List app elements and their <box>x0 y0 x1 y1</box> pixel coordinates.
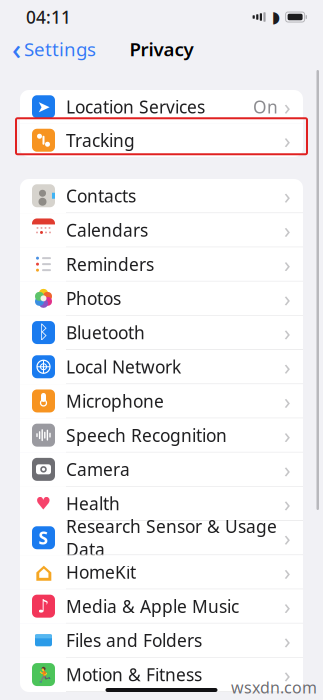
staticText: 04:11 <box>26 5 71 28</box>
button[interactable]: Speech Recognition <box>20 418 303 453</box>
staticText: Tracking <box>66 129 135 152</box>
staticText: › <box>284 421 291 449</box>
button[interactable]: Photos <box>20 282 303 316</box>
staticText: › <box>284 558 291 586</box>
staticText: Calendars <box>66 218 148 241</box>
staticText: Local Network <box>66 355 181 378</box>
staticText: › <box>284 489 291 518</box>
button[interactable]: ⌂ <box>20 555 303 589</box>
button[interactable]: ♥ <box>20 487 303 521</box>
button[interactable]: Files and Folders <box>20 624 303 658</box>
staticText: wsxdn.com <box>231 677 317 698</box>
staticText: Privacy <box>129 37 193 61</box>
staticText: Location Services <box>66 95 205 118</box>
staticText: ♪ <box>37 596 49 617</box>
staticText: Health <box>66 492 120 515</box>
staticText: › <box>284 524 291 552</box>
button[interactable]: Calendars <box>20 213 303 247</box>
button[interactable]: ➤ <box>20 90 303 123</box>
button[interactable]: Reminders <box>20 247 303 282</box>
staticText: › <box>284 126 291 154</box>
staticText: › <box>284 250 291 278</box>
staticText: Settings <box>24 37 96 61</box>
staticText: HomeKit <box>66 560 136 583</box>
staticText: Files and Folders <box>66 629 202 652</box>
staticText: › <box>284 592 291 620</box>
staticText: ‹ <box>12 30 21 68</box>
button[interactable]: S <box>20 521 303 555</box>
staticText: › <box>284 216 291 244</box>
staticText: Reminders <box>66 253 154 276</box>
staticText: Photos <box>66 287 121 310</box>
staticText: Speech Recognition <box>66 424 227 447</box>
staticText: Research Sensor & Usage Data <box>66 515 277 561</box>
staticText: ◗ <box>272 8 280 26</box>
staticText: Camera <box>66 458 130 481</box>
staticText: › <box>284 284 291 312</box>
staticText: › <box>284 660 291 689</box>
staticText: 🏃 <box>34 666 52 683</box>
staticText: › <box>284 182 291 210</box>
staticText: Microphone <box>66 389 164 412</box>
button[interactable]: ‹ <box>0 26 96 72</box>
staticText: › <box>284 626 291 654</box>
button[interactable]: 🏃 <box>20 658 303 692</box>
button[interactable]: Camera <box>20 453 303 487</box>
staticText: On <box>253 95 278 118</box>
staticText: ᛒ <box>38 323 49 342</box>
staticText: › <box>284 93 291 121</box>
staticText: › <box>284 455 291 483</box>
staticText: ⌂ <box>34 558 52 586</box>
staticText: › <box>284 387 291 415</box>
button[interactable]: Tracking <box>20 123 303 157</box>
staticText: ➤ <box>37 98 50 116</box>
staticText: › <box>284 353 291 381</box>
staticText: S <box>38 526 48 549</box>
button[interactable]: ᛒ <box>20 316 303 350</box>
button[interactable]: Local Network <box>20 350 303 384</box>
staticText: Motion & Fitness <box>66 663 202 686</box>
button[interactable]: Contacts <box>20 179 303 213</box>
staticText: ♥ <box>35 494 51 513</box>
button[interactable]: ♪ <box>20 589 303 624</box>
staticText: Media & Apple Music <box>66 595 239 618</box>
staticText: Bluetooth <box>66 321 145 344</box>
staticText: Contacts <box>66 184 136 207</box>
staticText: › <box>284 318 291 347</box>
button[interactable]: Microphone <box>20 384 303 418</box>
